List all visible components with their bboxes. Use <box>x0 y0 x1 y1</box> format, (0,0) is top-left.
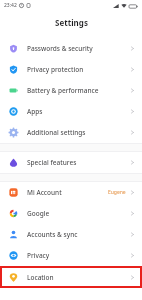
staticText: Accounts & sync <box>27 230 78 239</box>
staticText: Google <box>27 209 50 218</box>
button[interactable]: Google <box>0 203 142 224</box>
staticText: Settings <box>55 17 88 28</box>
staticText: Apps <box>27 107 43 116</box>
button[interactable]: Location <box>0 266 142 288</box>
staticText: Privacy <box>27 251 50 260</box>
button[interactable]: Privacy <box>0 245 142 266</box>
staticText: Privacy protection <box>27 65 84 74</box>
staticText: Additional settings <box>27 128 86 137</box>
staticText: 23:42 <box>4 2 17 9</box>
button[interactable]: Passwords & security <box>0 38 142 59</box>
staticText: Eugene <box>108 189 126 196</box>
staticText: Passwords & security <box>27 44 93 53</box>
staticText: Mi Account <box>27 188 62 197</box>
button[interactable]: Privacy protection <box>0 59 142 80</box>
button[interactable]: Battery & performance <box>0 80 142 101</box>
button[interactable]: Apps <box>0 101 142 122</box>
button[interactable]: Accounts & sync <box>0 224 142 245</box>
button[interactable]: Mi Account <box>0 182 142 203</box>
button[interactable]: Special features <box>0 152 142 173</box>
staticText: Battery & performance <box>27 86 99 95</box>
button[interactable]: Additional settings <box>0 122 142 143</box>
staticText: Special features <box>27 158 77 167</box>
staticText: Location <box>27 273 54 282</box>
